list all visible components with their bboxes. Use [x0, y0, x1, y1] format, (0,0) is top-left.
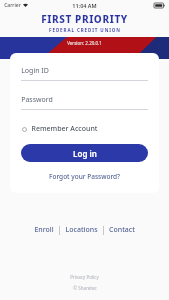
button[interactable]: Locations: [60, 223, 103, 237]
staticText: Remember Account: [31, 124, 98, 134]
staticText: FEDERAL CREDIT UNION: [49, 27, 121, 33]
staticText: FIRST PRIORITY: [41, 12, 128, 26]
staticText: © Sharetec: [73, 285, 97, 291]
other: Wi-Fi signal: [23, 3, 28, 8]
other: Battery full: [154, 3, 165, 8]
staticText: Carrier: [4, 2, 21, 9]
button[interactable]: Remember Account: [21, 123, 99, 135]
staticText: Login ID: [21, 66, 49, 76]
button[interactable]: Enroll: [29, 223, 59, 237]
staticText: Log in: [73, 148, 97, 159]
button[interactable]: Contact: [104, 223, 140, 237]
button[interactable]: Privacy Policy: [67, 273, 102, 281]
button[interactable]: Forgot your Password?: [46, 171, 123, 182]
staticText: Version: 2.20.0.1: [67, 40, 102, 46]
button[interactable]: Password: [21, 95, 148, 110]
button[interactable]: Log in: [21, 144, 148, 162]
button[interactable]: Login ID: [21, 66, 148, 81]
staticText: Password: [21, 95, 53, 105]
staticText: 11:04 AM: [72, 2, 97, 9]
